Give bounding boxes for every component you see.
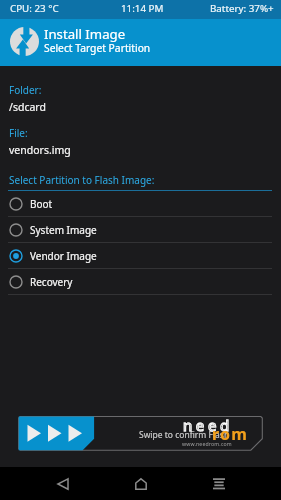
staticText: Battery: 37%+ xyxy=(210,2,274,15)
staticText: Select Partition to Flash Image: xyxy=(9,173,155,187)
button[interactable]: Recent apps xyxy=(196,467,241,500)
staticText: Swipe to confirm Flash xyxy=(139,429,230,441)
button[interactable]: Boot xyxy=(0,191,281,216)
staticText: Select Target Partition xyxy=(44,41,151,55)
staticText: 11:14 PM xyxy=(121,2,164,15)
button[interactable]: Back xyxy=(40,467,85,500)
staticText: rom xyxy=(212,423,249,445)
button[interactable]: Home xyxy=(118,467,163,500)
button[interactable]: Recovery xyxy=(0,269,281,294)
staticText: Vendor Image xyxy=(30,249,97,263)
staticText: Folder: xyxy=(9,83,42,97)
button[interactable]: Swipe to confirm Flash xyxy=(0,410,281,455)
staticText: Boot xyxy=(30,197,53,211)
staticText: /sdcard xyxy=(9,100,46,114)
staticText: CPU: 23 °C xyxy=(10,2,59,15)
staticText: Install Image xyxy=(44,25,126,43)
staticText: System Image xyxy=(30,223,97,237)
button[interactable]: Vendor Image xyxy=(0,243,281,268)
staticText: File: xyxy=(9,126,28,140)
staticText: Recovery xyxy=(30,275,73,289)
button[interactable]: System Image xyxy=(0,217,281,242)
button[interactable]: Install Image xyxy=(0,19,281,66)
staticText: www.needrom.com xyxy=(182,440,232,447)
staticText: vendors.img xyxy=(9,143,71,157)
staticText: need xyxy=(183,415,233,435)
